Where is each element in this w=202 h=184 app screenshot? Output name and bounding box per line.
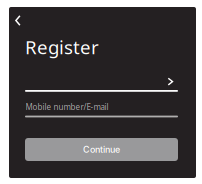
- button[interactable]: Back: [8, 10, 30, 32]
- staticText: Register: [25, 34, 99, 59]
- staticText: Mobile number/E-mail: [26, 101, 109, 112]
- button[interactable]: Country code: [25, 70, 178, 94]
- button[interactable]: Continue: [25, 138, 178, 161]
- staticText: Continue: [83, 144, 120, 155]
- button[interactable]: Mobile number/E-mail: [25, 101, 178, 119]
